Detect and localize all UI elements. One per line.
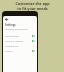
button[interactable] [32, 45, 35, 47]
button[interactable]: Privacy [3, 48, 37, 53]
button[interactable] [32, 40, 35, 42]
button[interactable] [32, 35, 35, 37]
button[interactable] [32, 50, 35, 52]
staticText: to fit your needs [17, 6, 48, 11]
button[interactable]: Appearance [3, 43, 37, 48]
staticText: Notifications [5, 34, 20, 37]
staticText: Sound & haptics [5, 39, 24, 42]
staticText: Manage preferences [5, 27, 29, 30]
button[interactable]: Notifications [3, 33, 37, 38]
button[interactable]: Back [5, 18, 8, 21]
staticText: Privacy [5, 49, 13, 52]
button[interactable]: Sound & haptics [3, 38, 37, 43]
staticText: Appearance [5, 44, 19, 47]
staticText: Settings [5, 23, 16, 27]
staticText: Customize the app [15, 1, 50, 6]
